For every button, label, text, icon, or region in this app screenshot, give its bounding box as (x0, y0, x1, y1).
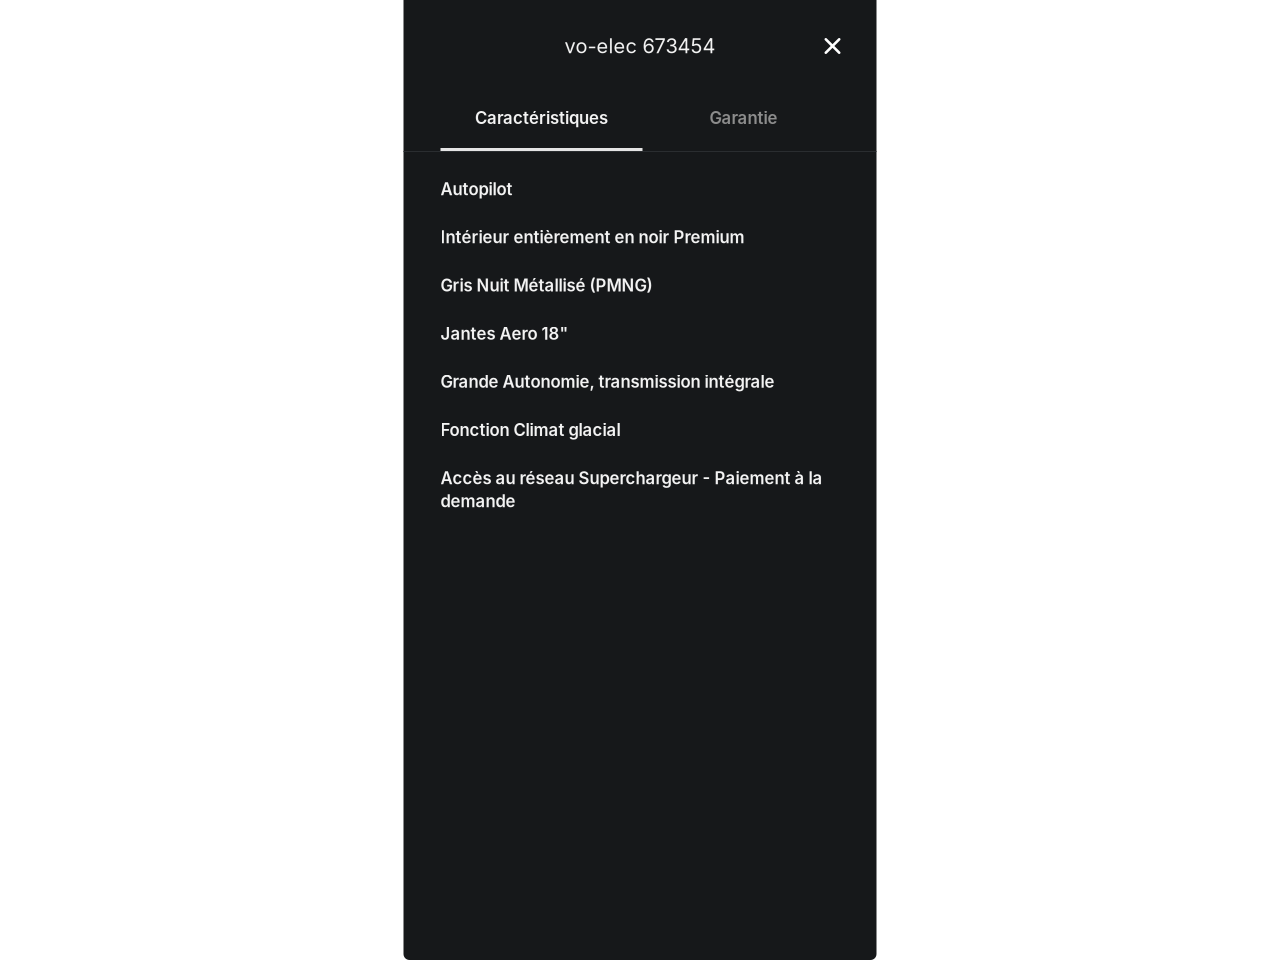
staticText: Fonction Climat glacial (440, 420, 620, 440)
staticText: Intérieur entièrement en noir Premium (440, 227, 744, 247)
staticText: Gris Nuit Métallisé (PMNG) (440, 275, 652, 295)
staticText: Accès au réseau Superchargeur - Paiement… (440, 468, 822, 511)
staticText: vo-elec 673454 (564, 34, 715, 58)
staticText: Grande Autonomie, transmission intégrale (440, 372, 774, 392)
staticText: Autopilot (440, 179, 512, 199)
button[interactable]: Garantie (642, 92, 844, 144)
staticText: Jantes Aero 18" (440, 323, 568, 344)
button[interactable]: Caractéristiques (440, 92, 642, 144)
button[interactable]: Fermer (810, 24, 854, 68)
staticText: Caractéristiques (475, 108, 608, 128)
staticText: Garantie (709, 108, 777, 128)
